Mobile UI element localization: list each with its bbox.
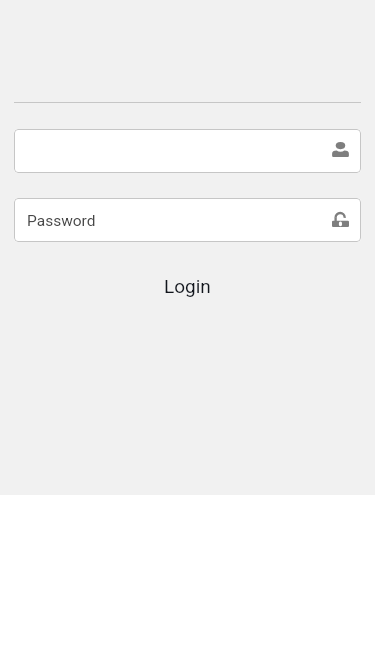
button[interactable]: Login (0, 268, 375, 304)
button[interactable]: Username (14, 129, 361, 173)
staticText: Password (27, 212, 96, 230)
button[interactable]: Password (14, 198, 361, 242)
staticText: Login (164, 275, 211, 297)
